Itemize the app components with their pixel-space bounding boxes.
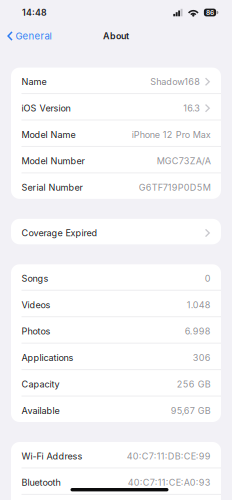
staticText: 16.3 [183, 103, 200, 114]
staticText: Capacity [21, 379, 59, 390]
staticText: MGC73ZA/A [157, 156, 211, 167]
button[interactable]: Coverage Expired [11, 219, 221, 244]
button[interactable]: Capacity [11, 370, 221, 395]
staticText: 14:48 [22, 7, 47, 18]
staticText: 256 GB [177, 379, 211, 390]
staticText: G6TF719P0D5M [139, 182, 211, 193]
button[interactable]: Songs [11, 264, 221, 290]
button[interactable]: Bluetooth [11, 468, 221, 494]
staticText: Bluetooth [21, 477, 60, 488]
button[interactable]: Wi-Fi Address [11, 442, 221, 467]
staticText: 95,67 GB [171, 405, 211, 416]
staticText: 6.998 [185, 326, 211, 337]
button[interactable]: Available [11, 396, 221, 422]
button[interactable]: Name [11, 68, 221, 93]
button[interactable]: General [0, 25, 58, 47]
button[interactable]: Applications [11, 344, 221, 369]
staticText: Wi-Fi Address [21, 451, 82, 462]
button[interactable]: Serial Number [11, 173, 221, 199]
staticText: 40:C7:11:DB:CE:99 [127, 451, 211, 462]
staticText: 40:C7:11:CE:A0:93 [128, 477, 211, 488]
staticText: 306 [193, 352, 211, 363]
staticText: iPhone 12 Pro Max [132, 129, 211, 140]
staticText: 1.048 [187, 299, 211, 310]
staticText: Serial Number [21, 182, 82, 193]
staticText: General [16, 30, 52, 42]
staticText: Model Name [21, 129, 75, 140]
button[interactable]: iOS Version [11, 94, 221, 119]
staticText: Photos [21, 326, 50, 337]
button[interactable]: Model Number [11, 147, 221, 172]
staticText: Videos [21, 299, 50, 310]
staticText: 86 [206, 8, 214, 16]
staticText: About [103, 31, 129, 41]
staticText: Name [21, 76, 46, 87]
staticText: Applications [21, 352, 73, 363]
staticText: Model Number [21, 156, 84, 167]
staticText: Coverage Expired [21, 227, 97, 238]
staticText: iOS Version [21, 103, 70, 114]
button[interactable]: Photos [11, 317, 221, 343]
staticText: 0 [205, 273, 211, 284]
button[interactable]: Model Name [11, 120, 221, 146]
staticText: Shadow168 [150, 76, 200, 87]
staticText: Songs [21, 273, 48, 284]
button[interactable]: Videos [11, 291, 221, 316]
staticText: Available [21, 405, 59, 416]
